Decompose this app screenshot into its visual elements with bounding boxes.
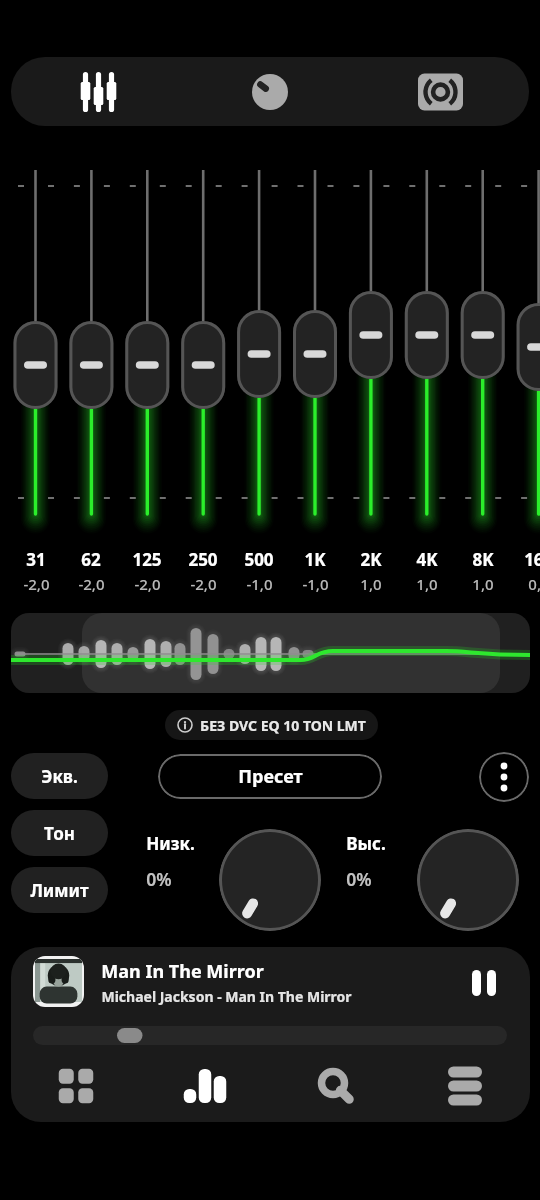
staticText: 16K (524, 548, 540, 571)
button[interactable]: Tone (183, 57, 356, 126)
staticText: Man In The Mirror (101, 959, 264, 984)
staticText: 500 (244, 548, 274, 571)
button[interactable]: Waveform (11, 613, 530, 693)
button[interactable]: Menu (400, 1056, 530, 1116)
staticText: 62 (81, 548, 101, 571)
button[interactable]: Search (270, 1056, 400, 1116)
staticText: 0% (146, 867, 172, 891)
staticText: БЕЗ DVC EQ 10 TON LMT (200, 716, 366, 735)
staticText: 1K (304, 548, 326, 571)
button[interactable]: More options (479, 752, 529, 802)
button[interactable]: Knob (219, 829, 321, 931)
staticText: Michael Jackson - Man In The Mirror (101, 987, 352, 1006)
staticText: -1,0 (302, 574, 329, 594)
staticText: -1,0 (246, 574, 273, 594)
staticText: -2,0 (23, 574, 50, 594)
staticText: Пресет (238, 764, 303, 789)
staticText: 8K (472, 548, 494, 571)
staticText: 250 (188, 548, 218, 571)
button[interactable]: Equalizer (11, 57, 183, 126)
staticText: Лимит (30, 879, 89, 902)
staticText: Выс. (346, 832, 386, 855)
staticText: -2,0 (78, 574, 105, 594)
staticText: 0,0 (528, 574, 540, 594)
staticText: 0% (346, 867, 372, 891)
button[interactable]: Тон (11, 810, 108, 856)
button[interactable]: БЕЗ DVC EQ 10 TON LMT (165, 710, 378, 740)
button[interactable]: Экв. (11, 753, 108, 799)
staticText: 2K (360, 548, 382, 571)
staticText: Экв. (41, 765, 78, 788)
staticText: 1,0 (360, 574, 382, 594)
staticText: 1,0 (472, 574, 494, 594)
button[interactable]: Seek (33, 1026, 507, 1045)
staticText: Низк. (146, 832, 195, 855)
staticText: 4K (416, 548, 438, 571)
button[interactable]: Knob (417, 829, 519, 931)
button[interactable]: Equalizer (140, 1056, 270, 1116)
staticText: 31 (26, 548, 46, 571)
button[interactable]: Пресет (158, 754, 382, 799)
button[interactable]: Surround (356, 57, 529, 126)
button[interactable]: Pause (456, 955, 512, 1011)
button[interactable]: Apps (11, 1056, 140, 1116)
staticText: -2,0 (190, 574, 217, 594)
staticText: 1,0 (416, 574, 438, 594)
staticText: 125 (132, 548, 162, 571)
button[interactable]: Лимит (11, 867, 108, 913)
staticText: Тон (44, 822, 75, 845)
staticText: -2,0 (134, 574, 161, 594)
